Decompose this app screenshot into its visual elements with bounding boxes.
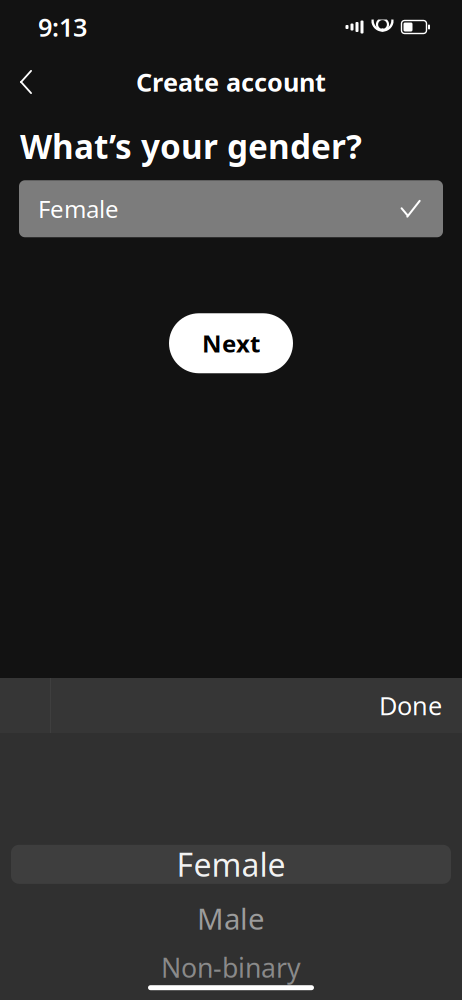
staticText: Create account — [136, 65, 326, 99]
button[interactable]: Next — [169, 313, 293, 373]
staticText: Done — [379, 689, 442, 722]
button[interactable]: Done — [365, 681, 462, 730]
button[interactable]: Female — [19, 180, 443, 237]
button[interactable]: Back — [4, 60, 48, 104]
staticText: Female — [176, 843, 285, 886]
staticText: Female — [38, 193, 119, 225]
staticText: Non-binary — [161, 950, 301, 985]
staticText: What’s your gender? — [20, 124, 362, 168]
staticText: Male — [197, 899, 265, 938]
staticText: 9:13 — [38, 10, 87, 44]
staticText: Next — [202, 327, 260, 359]
